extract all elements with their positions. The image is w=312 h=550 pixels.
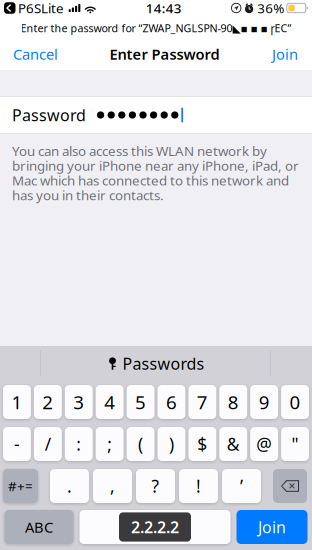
button[interactable]: ( xyxy=(127,427,154,461)
staticText: ABC xyxy=(25,517,53,537)
staticText: 6 xyxy=(166,390,177,414)
button[interactable]: ABC xyxy=(4,510,73,544)
staticText: Password xyxy=(12,104,86,126)
button[interactable]: , xyxy=(93,469,132,503)
staticText: 5 xyxy=(135,390,146,414)
staticText: You can also access this WLAN network by… xyxy=(12,142,299,204)
staticText: Join xyxy=(272,44,298,64)
button[interactable]: #+= xyxy=(3,469,38,503)
button[interactable]: Cancel xyxy=(2,41,69,67)
staticText: $ xyxy=(197,432,207,455)
button[interactable]: $ xyxy=(188,427,216,461)
staticText: 0 xyxy=(290,390,301,414)
button[interactable]: / xyxy=(34,427,62,461)
button[interactable]: 6 xyxy=(157,385,185,419)
staticText: Enter Password xyxy=(109,44,219,64)
button[interactable]: ; xyxy=(96,427,124,461)
staticText: 4 xyxy=(104,390,115,414)
staticText: ! xyxy=(196,474,201,497)
staticText: , xyxy=(110,474,115,497)
staticText: Cancel xyxy=(13,44,58,64)
button[interactable]: . xyxy=(50,469,89,503)
staticText: / xyxy=(45,432,51,455)
staticText: 7 xyxy=(197,390,208,414)
button[interactable]: 1 xyxy=(3,385,31,419)
button[interactable]: : xyxy=(65,427,93,461)
button[interactable]: Join xyxy=(260,41,310,67)
button[interactable]: 3 xyxy=(65,385,93,419)
staticText: Passwords xyxy=(122,353,204,374)
button[interactable]: Delete xyxy=(273,469,307,503)
staticText: ? xyxy=(151,474,159,497)
button[interactable]: @ xyxy=(250,427,278,461)
staticText: 2.2.2.2 xyxy=(131,516,179,538)
staticText: " xyxy=(292,432,299,455)
staticText: 9 xyxy=(259,390,270,414)
staticText: ( xyxy=(138,432,143,455)
button[interactable]: 0 xyxy=(281,385,309,419)
staticText: Join xyxy=(258,516,286,538)
staticText: 1 xyxy=(11,390,22,414)
button[interactable] xyxy=(79,510,230,544)
staticText: 8 xyxy=(228,390,239,414)
staticText: @ xyxy=(256,432,272,455)
staticText: ; xyxy=(107,432,112,455)
button[interactable]: ’ xyxy=(222,469,261,503)
button[interactable]: 2 xyxy=(34,385,62,419)
button[interactable]: " xyxy=(281,427,309,461)
staticText: : xyxy=(76,432,81,455)
button[interactable]: Passwords xyxy=(107,346,204,381)
staticText: 2 xyxy=(42,390,53,414)
staticText: #+= xyxy=(8,477,33,495)
button[interactable]: 5 xyxy=(127,385,154,419)
button[interactable]: - xyxy=(3,427,31,461)
staticText: 36% xyxy=(257,0,284,17)
staticText: Enter the password for “ZWAP_NGLSPN-90◣▪… xyxy=(20,21,291,35)
button[interactable]: ) xyxy=(157,427,185,461)
button[interactable]: Join xyxy=(236,510,307,544)
button[interactable]: 8 xyxy=(219,385,247,419)
staticText: ✕ xyxy=(288,481,296,491)
button[interactable]: & xyxy=(219,427,247,461)
button[interactable]: 7 xyxy=(188,385,216,419)
staticText: ) xyxy=(169,432,174,455)
button[interactable]: 9 xyxy=(250,385,278,419)
staticText: - xyxy=(14,432,20,455)
button[interactable]: ? xyxy=(136,469,175,503)
staticText: P6SLite xyxy=(18,0,64,17)
staticText: ’ xyxy=(240,474,243,497)
staticText: 14:43 xyxy=(146,0,182,17)
staticText: . xyxy=(67,474,72,497)
button[interactable]: ! xyxy=(179,469,218,503)
staticText: 3 xyxy=(73,390,84,414)
button[interactable]: 4 xyxy=(96,385,124,419)
staticText: & xyxy=(227,432,240,455)
